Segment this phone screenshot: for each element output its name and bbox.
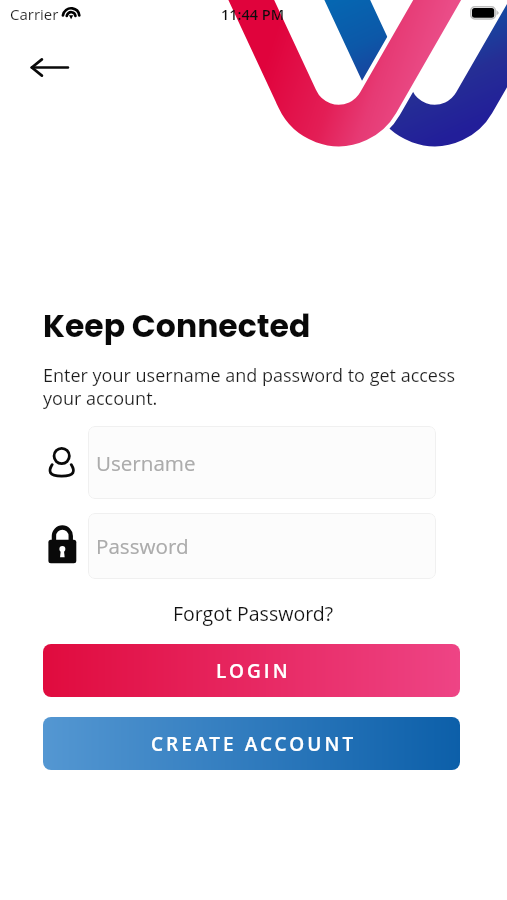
- staticText: Keep Connected: [43, 304, 311, 348]
- staticText: Password: [96, 532, 189, 560]
- staticText: Username: [96, 449, 196, 477]
- staticText: Carrier: [10, 4, 59, 24]
- button[interactable]: LOGIN: [43, 644, 460, 697]
- staticText: 11:44 PM: [221, 5, 285, 25]
- button[interactable]: Forgot Password?: [168, 600, 338, 626]
- staticText: Forgot Password?: [173, 600, 334, 626]
- staticText: LOGIN: [216, 658, 291, 684]
- button[interactable]: Password: [88, 513, 436, 579]
- staticText: CREATE ACCOUNT: [151, 731, 357, 757]
- button[interactable]: Username: [88, 426, 436, 499]
- button[interactable]: Back: [26, 44, 74, 91]
- button[interactable]: CREATE ACCOUNT: [43, 717, 460, 770]
- staticText: Enter your username and password to get …: [43, 363, 467, 410]
